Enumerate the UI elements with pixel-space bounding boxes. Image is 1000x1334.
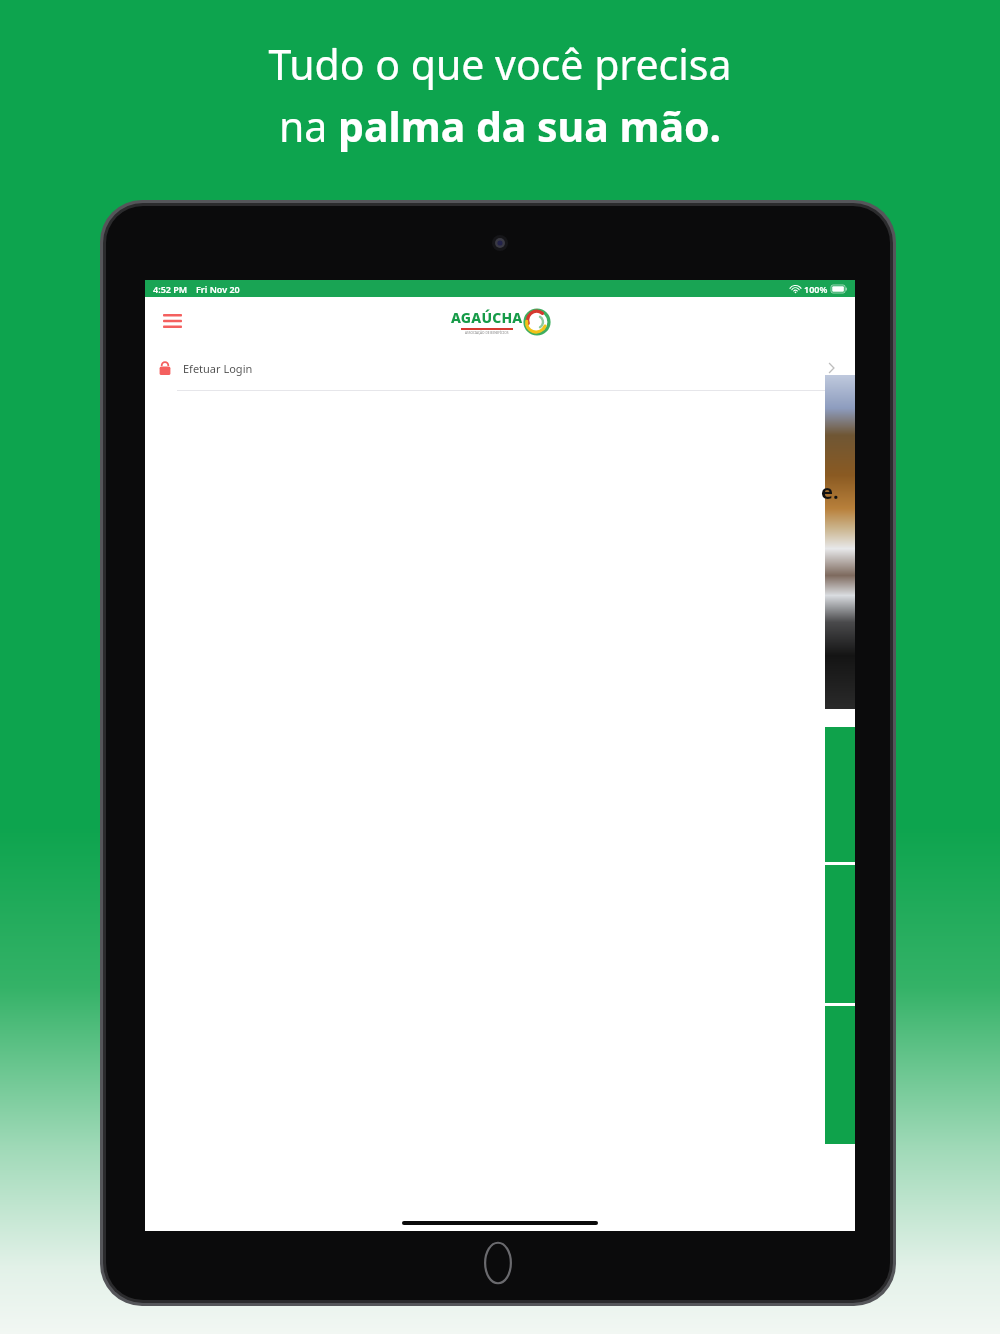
staticText: Tudo o que você precisa — [268, 36, 732, 92]
staticText: Fri Nov 20 — [196, 283, 240, 295]
staticText: 100% — [804, 283, 828, 295]
staticText: AGAÚCHA — [451, 308, 523, 327]
staticText: na — [279, 98, 338, 154]
staticText: Efetuar Login — [183, 361, 253, 376]
button[interactable]: Menu — [157, 306, 187, 336]
button[interactable]: Efetuar Login — [145, 345, 855, 391]
staticText: ASSOCIAÇÃO DE BENEFÍCIOS — [465, 331, 509, 335]
staticText: e. — [821, 478, 839, 505]
staticText: palma da sua mão. — [338, 98, 722, 154]
staticText: 4:52 PM — [153, 283, 188, 295]
